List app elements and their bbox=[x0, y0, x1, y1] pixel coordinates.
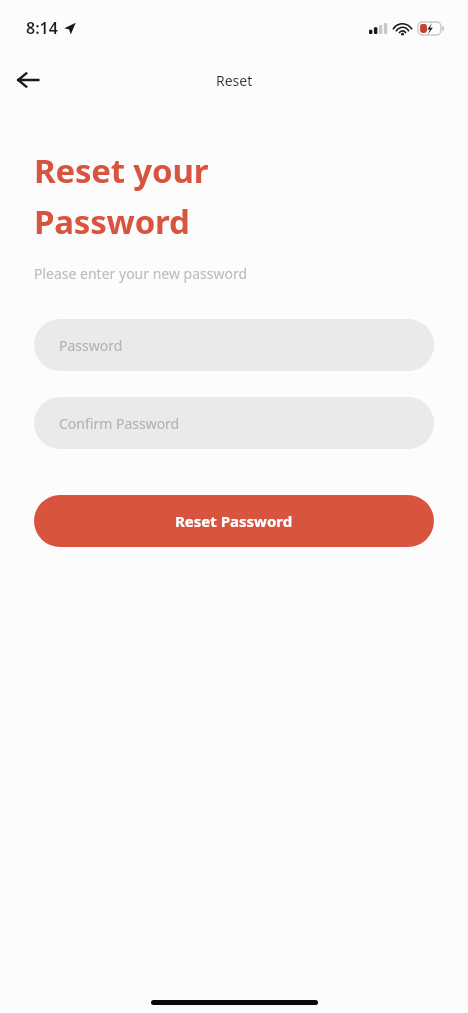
button[interactable]: Password bbox=[34, 319, 434, 371]
staticText: Password bbox=[59, 336, 123, 355]
staticText: Reset your bbox=[34, 148, 209, 193]
staticText: Confirm Password bbox=[59, 414, 180, 433]
button[interactable]: Reset Password bbox=[34, 495, 434, 547]
staticText: Reset Password bbox=[175, 511, 293, 531]
staticText: Password bbox=[34, 199, 190, 244]
button[interactable]: Confirm Password bbox=[34, 397, 434, 449]
staticText: Reset bbox=[216, 71, 253, 90]
staticText: 8:14 bbox=[26, 17, 58, 39]
button[interactable]: Back bbox=[8, 60, 48, 100]
staticText: Please enter your new password bbox=[34, 264, 248, 283]
